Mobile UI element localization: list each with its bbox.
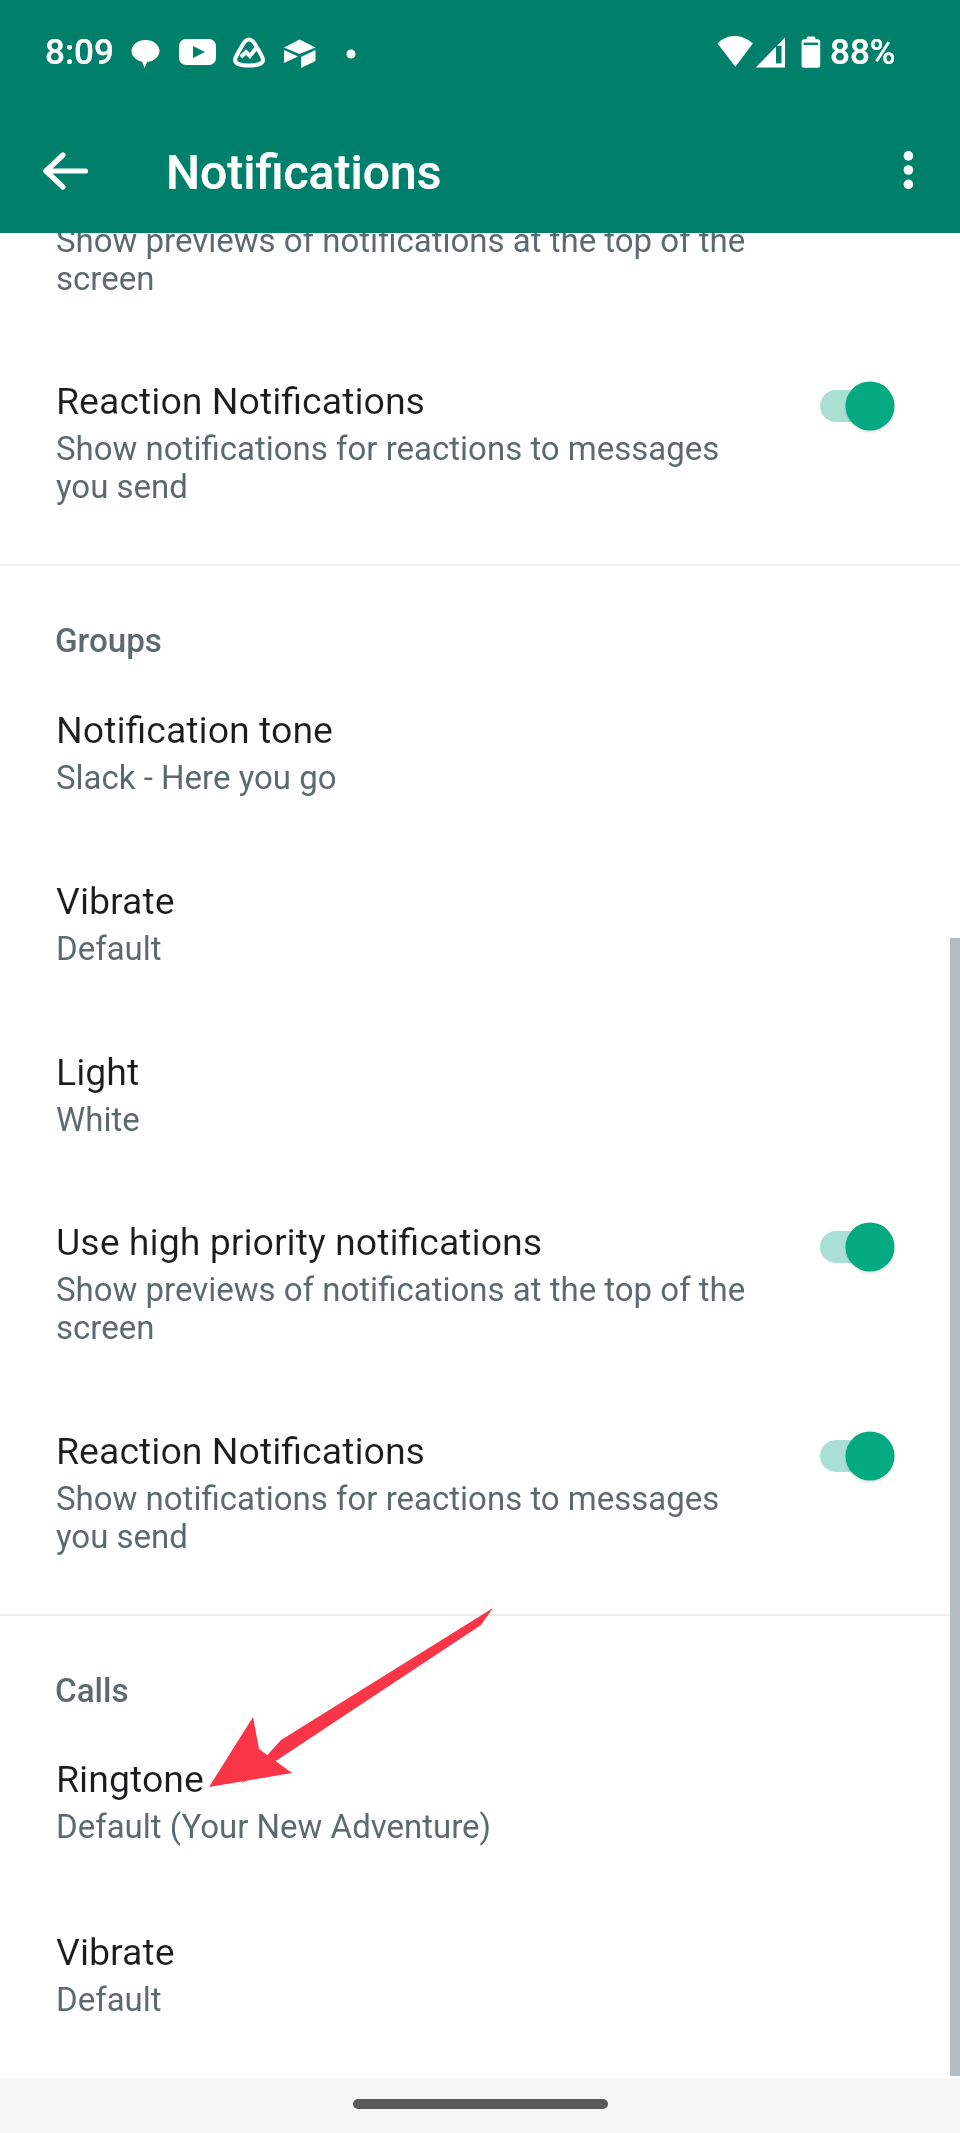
staticText: Vibrate (56, 1930, 175, 1974)
staticText: Default (Your New Adventure) (56, 1807, 492, 1846)
staticText: Use high priority notifications (56, 171, 543, 215)
staticText: screen (56, 1308, 155, 1347)
staticText: Vibrate (56, 879, 175, 923)
button[interactable]: Light (0, 1030, 960, 1160)
staticText: Default (56, 1980, 162, 2019)
staticText: you send (56, 467, 188, 506)
staticText: 8:09 (45, 32, 114, 73)
staticText: Groups (55, 621, 162, 660)
staticText: Show previews of notifications at the to… (56, 1270, 746, 1309)
staticText: Show notifications for reactions to mess… (56, 1479, 720, 1518)
staticText: Show notifications for reactions to mess… (56, 429, 720, 468)
button[interactable]: Vibrate (0, 859, 960, 989)
staticText: Reaction Notifications (56, 1429, 425, 1473)
staticText: Default (56, 929, 162, 968)
button[interactable]: Notification tone (0, 688, 960, 818)
staticText: Show previews of notifications at the to… (56, 221, 746, 260)
button[interactable]: Reaction Notifications (0, 1409, 960, 1577)
button[interactable]: Back (28, 132, 108, 212)
staticText: Calls (55, 1671, 129, 1710)
staticText: you send (56, 1517, 188, 1556)
staticText: Notifications (166, 144, 442, 200)
button[interactable]: Use high priority notifications (0, 1200, 960, 1368)
staticText: Reaction Notifications (56, 379, 425, 423)
staticText: screen (56, 259, 155, 298)
button[interactable]: Ringtone (0, 1737, 960, 1867)
staticText: Light (56, 1050, 140, 1094)
staticText: Notification tone (56, 708, 334, 752)
staticText: White (56, 1100, 140, 1139)
staticText: Ringtone (56, 1757, 204, 1801)
staticText: Use high priority notifications (56, 1220, 543, 1264)
staticText: 88% (830, 32, 896, 73)
button[interactable]: Reaction Notifications (0, 359, 960, 527)
button[interactable]: Vibrate (0, 1910, 960, 2040)
button[interactable]: Use high priority notifications (0, 151, 960, 319)
staticText: Slack - Here you go (56, 758, 337, 797)
button[interactable]: More options (868, 130, 948, 210)
